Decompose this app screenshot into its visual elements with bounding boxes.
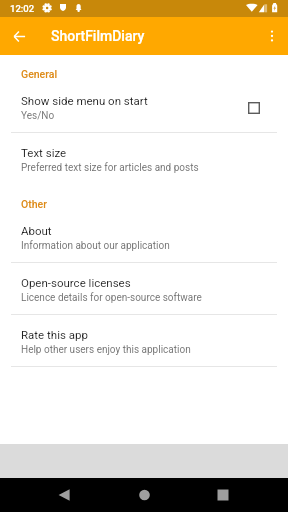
button[interactable]: Show side menu on start	[243, 97, 265, 119]
button[interactable]: Navigate up	[7, 24, 32, 49]
staticText: Help other users enjoy this application	[21, 344, 191, 356]
staticText: Information about our application	[21, 240, 170, 252]
staticText: General	[21, 68, 58, 80]
button[interactable]: Open-source licenses	[0, 263, 288, 314]
staticText: ShortFilmDiary	[51, 28, 145, 44]
button[interactable]: Rate this app	[0, 315, 288, 366]
staticText: Preferred text size for articles and pos…	[21, 162, 199, 174]
staticText: Licence details for open-source software	[21, 292, 202, 304]
staticText: 12:02	[10, 3, 35, 14]
staticText: Show side menu on start	[21, 94, 148, 107]
button[interactable]: Home	[126, 478, 162, 512]
staticText: Open-source licenses	[21, 276, 131, 289]
button[interactable]: About	[0, 211, 288, 262]
staticText: About	[21, 224, 52, 237]
staticText: Rate this app	[21, 328, 88, 341]
staticText: Yes/No	[21, 110, 55, 122]
staticText: Other	[21, 198, 47, 210]
button[interactable]: More options	[260, 24, 284, 48]
button[interactable]: Back	[46, 478, 82, 512]
button[interactable]: Show side menu on start	[0, 81, 288, 132]
staticText: Text size	[21, 146, 67, 159]
button[interactable]: Text size	[0, 133, 288, 184]
button[interactable]: Recent apps	[205, 478, 241, 512]
